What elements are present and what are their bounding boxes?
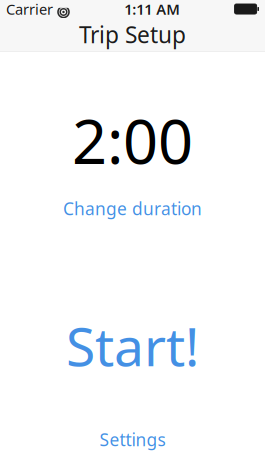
button[interactable]: Start! xyxy=(52,306,213,385)
button[interactable]: Settings xyxy=(87,423,177,456)
button[interactable]: Change duration xyxy=(53,193,212,224)
staticText: Change duration xyxy=(63,197,202,220)
staticText: Settings xyxy=(99,428,165,451)
staticText: 1:11 AM xyxy=(124,0,180,19)
staticText: Trip Setup xyxy=(79,19,186,49)
staticText: Carrier xyxy=(6,0,53,19)
staticText: Start! xyxy=(66,310,199,381)
staticText: 2:00 xyxy=(72,99,193,181)
